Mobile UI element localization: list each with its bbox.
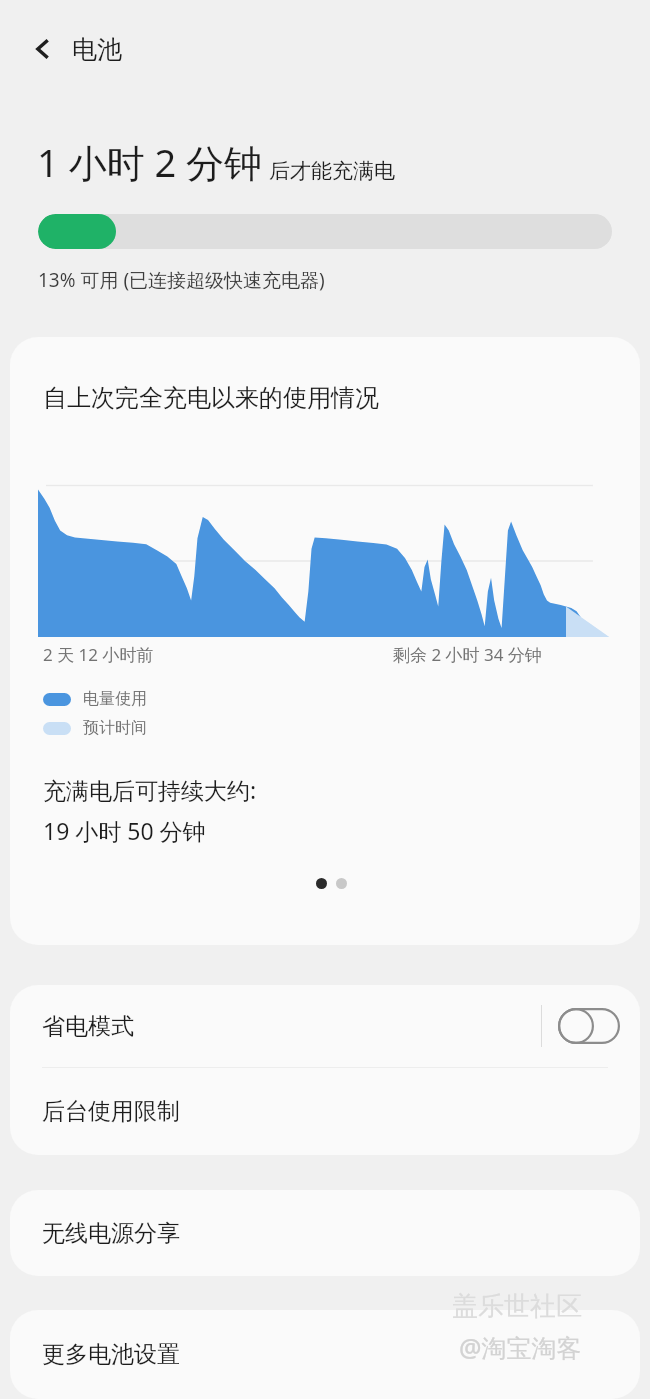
staticText: 电池 (72, 34, 122, 65)
staticText: 剩余 2 小时 34 分钟 (393, 643, 542, 666)
staticText: 更多电池设置 (42, 1340, 180, 1369)
staticText: 自上次完全充电以来的使用情况 (43, 383, 379, 413)
staticText: 充满电后可持续大约: (43, 774, 257, 805)
staticText: 电量使用 (83, 689, 147, 709)
staticText: 19 小时 50 分钟 (43, 815, 206, 846)
staticText: 无线电源分享 (42, 1219, 180, 1248)
staticText: 后才能充满电 (269, 158, 395, 184)
staticText: 预计时间 (83, 718, 147, 738)
staticText: 盖乐世社区 (452, 1290, 582, 1323)
staticText: @淘宝淘客 (459, 1330, 582, 1364)
staticText: 13% 可用 (已连接超级快速充电器) (38, 267, 325, 293)
button[interactable]: 省电模式 (10, 985, 640, 1067)
button[interactable]: 自上次完全充电以来的使用情况 (10, 337, 640, 945)
button[interactable]: 后台使用限制 (10, 1068, 640, 1155)
staticText: 后台使用限制 (42, 1097, 180, 1126)
button[interactable]: 无线电源分享 (10, 1190, 640, 1276)
staticText: 1 小时 2 分钟 (37, 136, 263, 188)
button[interactable]: Back (20, 26, 66, 72)
staticText: 省电模式 (42, 1012, 134, 1041)
button[interactable]: 更多电池设置 (10, 1310, 640, 1399)
staticText: 2 天 12 小时前 (43, 643, 154, 666)
button[interactable]: Power saving mode toggle (558, 1008, 620, 1044)
